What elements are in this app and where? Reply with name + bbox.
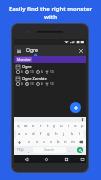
staticText: k: [71, 131, 74, 137]
staticText: 6: [41, 70, 43, 74]
staticText: u: [60, 123, 63, 129]
button[interactable]: Backspace: [76, 138, 86, 146]
button[interactable]: z: [25, 138, 33, 146]
button[interactable]: x: [33, 138, 41, 146]
button[interactable]: Ogre Zombie: [14, 75, 86, 87]
staticText: z: [28, 139, 30, 145]
staticText: x: [36, 139, 39, 145]
staticText: v: [50, 139, 53, 145]
button[interactable]: Shift: [14, 138, 25, 146]
staticText: b: [57, 139, 60, 145]
staticText: 6: [21, 70, 23, 74]
staticText: e: [32, 123, 35, 129]
button[interactable]: f: [37, 130, 44, 138]
staticText: s: [25, 131, 28, 137]
staticText: h: [55, 131, 58, 137]
button[interactable]: Add monster: [70, 102, 81, 113]
staticText: Easily find the right monster with the s…: [6, 5, 95, 29]
button[interactable]: a: [16, 130, 23, 138]
button[interactable]: e: [30, 122, 37, 130]
button[interactable]: g: [44, 130, 52, 138]
button[interactable]: r: [37, 122, 44, 130]
staticText: j: [63, 131, 65, 137]
staticText: m: [71, 139, 75, 145]
staticText: t: [47, 123, 49, 129]
staticText: d: [32, 131, 35, 137]
button[interactable]: o: [72, 122, 79, 130]
button[interactable]: p: [79, 122, 86, 130]
staticText: Monster: [17, 57, 31, 62]
button[interactable]: b: [55, 138, 62, 146]
button[interactable]: t: [44, 122, 51, 130]
button[interactable]: k: [68, 130, 76, 138]
staticText: i: [68, 123, 70, 129]
staticText: ?1☺: [17, 148, 24, 152]
staticText: Ogre: [22, 64, 32, 69]
staticText: r: [40, 123, 42, 129]
button[interactable]: j: [60, 130, 68, 138]
staticText: 13: [50, 70, 54, 74]
staticText: y: [53, 123, 56, 129]
button[interactable]: u: [58, 122, 65, 130]
staticText: c: [43, 139, 46, 145]
button[interactable]: ,: [26, 146, 32, 154]
button[interactable]: Menu: [16, 48, 22, 54]
staticText: w: [24, 123, 28, 129]
button[interactable]: y: [51, 122, 58, 130]
button[interactable]: Recents: [63, 156, 70, 163]
staticText: a: [18, 131, 21, 137]
button[interactable]: Ogre: [14, 63, 86, 75]
staticText: 13: [30, 70, 34, 74]
button[interactable]: i: [65, 122, 72, 130]
button[interactable]: l: [76, 130, 84, 138]
staticText: l: [79, 131, 81, 137]
staticText: 6: [21, 82, 23, 86]
button[interactable]: h: [52, 130, 60, 138]
button[interactable]: Back: [23, 156, 30, 163]
button[interactable]: Space: [33, 147, 66, 153]
button[interactable]: Clear search: [78, 48, 84, 54]
staticText: n: [64, 139, 67, 145]
staticText: q: [17, 123, 20, 129]
button[interactable]: Home: [43, 156, 50, 163]
staticText: 13: [50, 82, 54, 86]
button[interactable]: v: [48, 138, 55, 146]
button[interactable]: Keyboard: [79, 156, 85, 162]
staticText: Ogre: [26, 47, 38, 54]
staticText: f: [40, 131, 42, 137]
staticText: 6: [41, 82, 43, 86]
button[interactable]: ?1☺: [14, 146, 26, 154]
button[interactable]: w: [22, 122, 30, 130]
button[interactable]: s: [23, 130, 30, 138]
staticText: .: [69, 148, 71, 153]
staticText: 13: [30, 82, 34, 86]
staticText: ,: [28, 148, 30, 153]
staticText: g: [47, 131, 50, 137]
button[interactable]: n: [62, 138, 69, 146]
button[interactable]: Search: [77, 147, 83, 153]
staticText: Search: [44, 148, 55, 152]
button[interactable]: c: [41, 138, 48, 146]
staticText: p: [81, 123, 84, 129]
staticText: Ogre Zombie: [22, 76, 47, 81]
staticText: o: [74, 123, 77, 129]
button[interactable]: q: [14, 122, 22, 130]
button[interactable]: m: [69, 138, 76, 146]
button[interactable]: d: [30, 130, 37, 138]
button[interactable]: .: [67, 146, 73, 154]
